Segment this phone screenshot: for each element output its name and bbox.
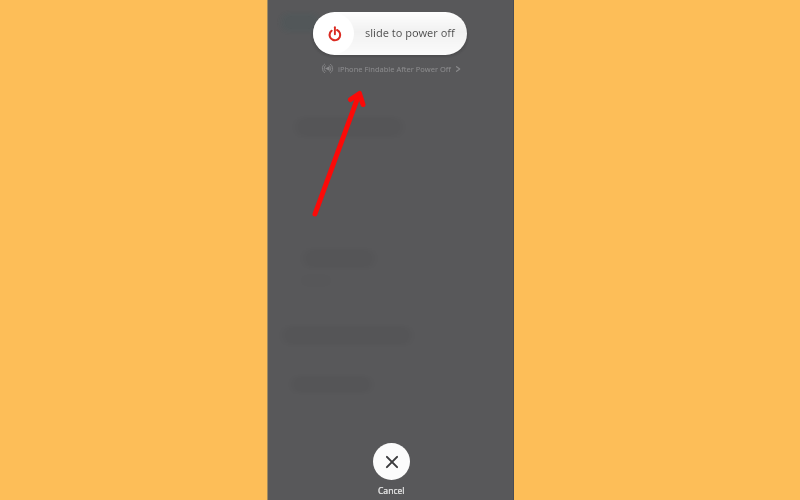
button[interactable]: Cancel	[373, 443, 410, 497]
button[interactable]: iPhone Findable After Power Off	[268, 60, 514, 77]
button[interactable]: slide to power off	[313, 12, 467, 55]
other: Cancel	[373, 443, 410, 480]
staticText: slide to power off	[365, 25, 455, 40]
staticText: Cancel	[378, 485, 405, 497]
staticText: iPhone Findable After Power Off	[338, 64, 451, 74]
